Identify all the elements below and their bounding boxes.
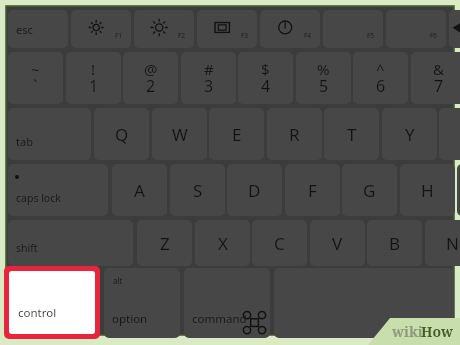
staticText: Q — [115, 123, 129, 146]
staticText: B — [389, 232, 401, 255]
button[interactable]: Function key F2 — [134, 10, 194, 48]
staticText: control — [18, 305, 57, 321]
staticText: $ — [261, 59, 270, 79]
staticText: F — [308, 179, 317, 202]
button[interactable]: C — [252, 220, 307, 266]
button[interactable]: ! — [66, 52, 121, 104]
button[interactable]: S — [170, 164, 225, 216]
button[interactable]: T — [324, 108, 379, 160]
staticText: Y — [405, 123, 415, 146]
button[interactable]: X — [195, 220, 250, 266]
staticText: % — [317, 59, 330, 79]
button[interactable] — [457, 164, 460, 216]
button[interactable]: E — [209, 108, 264, 160]
staticText: 2 — [146, 75, 156, 97]
button[interactable]: Z — [137, 220, 192, 266]
staticText: shift — [16, 241, 38, 255]
button[interactable]: alt — [104, 268, 180, 338]
staticText: ~ — [31, 59, 40, 79]
button[interactable]: control — [4, 266, 100, 339]
button[interactable]: G — [342, 164, 397, 216]
button[interactable]: D — [227, 164, 282, 216]
staticText: wiki — [392, 322, 423, 341]
staticText: option — [112, 311, 148, 327]
button[interactable]: W — [152, 108, 207, 160]
staticText: C — [274, 232, 285, 255]
button[interactable]: ^ — [353, 52, 408, 104]
button[interactable]: F — [285, 164, 340, 216]
staticText: F3 — [241, 31, 249, 40]
staticText: How — [421, 322, 454, 341]
staticText: ! — [91, 59, 96, 79]
staticText: command — [192, 311, 247, 327]
staticText: F6 — [430, 31, 438, 40]
staticText: 7 — [434, 75, 444, 97]
staticText: caps lock — [16, 191, 61, 205]
staticText: F1 — [115, 31, 123, 40]
staticText: X — [218, 232, 228, 255]
staticText: T — [347, 123, 357, 146]
button[interactable]: Function key F7 — [449, 10, 460, 48]
button[interactable]: $ — [238, 52, 293, 104]
button[interactable]: Space bar — [274, 268, 454, 338]
button[interactable]: A — [112, 164, 167, 216]
staticText: G — [363, 179, 376, 202]
button[interactable]: Function key F3 — [197, 10, 257, 48]
button[interactable]: # — [181, 52, 236, 104]
staticText: Z — [160, 232, 170, 255]
button[interactable]: H — [400, 164, 455, 216]
staticText: F4 — [304, 31, 312, 40]
staticText: A — [134, 179, 145, 202]
button[interactable]: command — [184, 268, 270, 338]
button[interactable]: tab — [8, 108, 91, 160]
staticText: 5 — [319, 75, 329, 97]
button[interactable]: B — [367, 220, 422, 266]
staticText: R — [289, 123, 300, 146]
staticText: 1 — [89, 75, 99, 97]
staticText: S — [193, 179, 203, 202]
staticText: tab — [16, 134, 33, 149]
staticText: @ — [144, 59, 158, 79]
button[interactable]: R — [267, 108, 322, 160]
staticText: F2 — [178, 31, 186, 40]
button[interactable]: % — [296, 52, 351, 104]
staticText: & — [433, 59, 444, 79]
staticText: ^ — [376, 59, 385, 79]
staticText: 4 — [261, 75, 271, 97]
staticText: H — [421, 179, 434, 202]
staticText: alt — [113, 275, 123, 286]
button[interactable]: Q — [94, 108, 149, 160]
button[interactable]: caps lock — [8, 164, 108, 216]
button[interactable]: Function key F1 — [71, 10, 131, 48]
button[interactable]: & — [411, 52, 460, 104]
button[interactable]: V — [310, 220, 365, 266]
staticText: # — [204, 59, 214, 79]
button[interactable]: esc — [8, 10, 68, 48]
button[interactable]: N — [425, 220, 460, 266]
button[interactable]: @ — [123, 52, 178, 104]
staticText: 6 — [376, 75, 386, 97]
staticText: ` — [33, 75, 38, 97]
staticText: F5 — [367, 31, 375, 40]
button[interactable]: shift — [8, 220, 133, 266]
staticText: D — [248, 179, 261, 202]
staticText: N — [446, 232, 459, 255]
staticText: W — [172, 123, 188, 146]
button[interactable]: Function key F4 — [260, 10, 320, 48]
staticText: V — [332, 232, 343, 255]
staticText: esc — [16, 22, 33, 37]
staticText: E — [232, 123, 242, 146]
staticText: 3 — [204, 75, 214, 97]
button[interactable]: Y — [382, 108, 437, 160]
